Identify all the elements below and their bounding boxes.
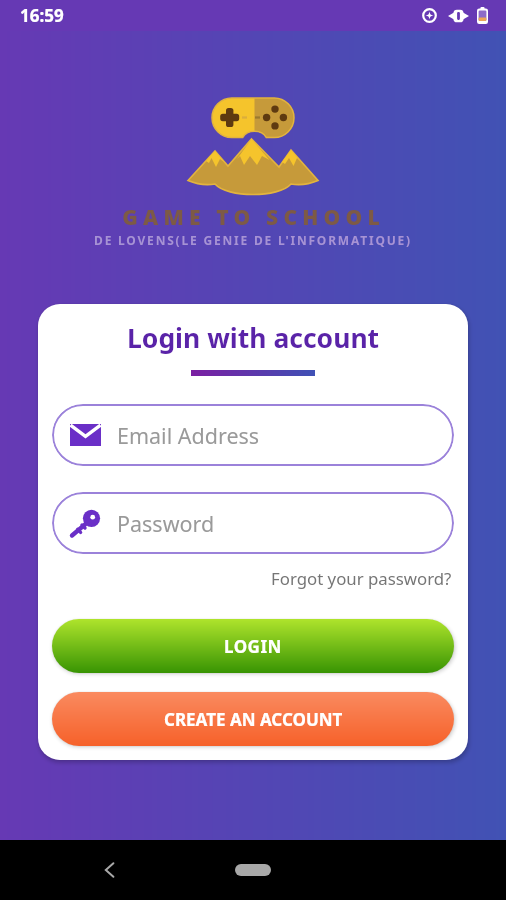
staticText: Login with account: [127, 320, 380, 356]
staticText: DE LOVENS(LE GENIE DE L'INFORMATIQUE): [94, 232, 412, 248]
staticText: 16:59: [20, 4, 64, 27]
staticText: Email Address: [117, 421, 260, 450]
button[interactable]: Back: [92, 852, 128, 888]
button[interactable]: Home: [235, 864, 271, 876]
button[interactable]: LOGIN: [52, 619, 454, 673]
staticText: Password: [117, 509, 215, 538]
staticText: CREATE AN ACCOUNT: [164, 708, 343, 731]
staticText: LOGIN: [224, 635, 282, 658]
staticText: GAME TO SCHOOL: [122, 203, 385, 232]
button[interactable]: Password: [52, 492, 454, 554]
button[interactable]: Forgot your password?: [269, 565, 454, 592]
staticText: Forgot your password?: [271, 567, 452, 590]
button[interactable]: CREATE AN ACCOUNT: [52, 692, 454, 746]
button[interactable]: Email Address: [52, 404, 454, 466]
